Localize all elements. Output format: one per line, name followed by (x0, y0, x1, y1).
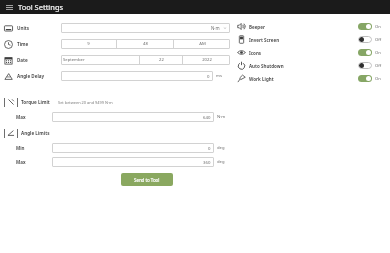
button[interactable]: On (358, 23, 372, 30)
button[interactable]: 22 (140, 55, 182, 65)
staticText: ms (216, 73, 230, 79)
staticText: N·m (217, 114, 230, 120)
button[interactable]: Max (4, 111, 230, 122)
staticText: On (375, 50, 387, 56)
button[interactable]: AM (174, 39, 230, 49)
staticText: Icons (249, 50, 358, 56)
button[interactable]: Off (358, 36, 372, 43)
staticText: Off (375, 63, 387, 69)
staticText: 360 (203, 159, 211, 165)
button[interactable]: 0 (61, 71, 213, 81)
staticText: On (375, 76, 387, 82)
staticText: 22 (159, 57, 164, 63)
staticText: AM (199, 41, 206, 47)
staticText: Angle Limits (21, 130, 50, 136)
button[interactable]: 0 (52, 143, 214, 153)
staticText: 0 (207, 73, 210, 79)
staticText: 640 (203, 114, 211, 120)
staticText: Work Light (249, 76, 358, 82)
button[interactable]: Auto Shutdown (237, 59, 387, 72)
staticText: Set between 20 and 9499 N·m (58, 100, 113, 105)
button[interactable]: Angle Delay (4, 68, 230, 84)
button[interactable]: Angle Limits (4, 127, 230, 139)
button[interactable]: Off (358, 62, 372, 69)
staticText: On (375, 24, 387, 30)
button[interactable]: On (358, 49, 372, 56)
staticText: Beeper (249, 24, 358, 30)
button[interactable]: Max (4, 156, 230, 167)
staticText: Off (375, 37, 387, 43)
button[interactable]: On (358, 75, 372, 82)
staticText: Invert Screen (249, 37, 358, 43)
staticText: 9 (87, 41, 90, 47)
button[interactable]: Beeper (237, 20, 387, 33)
button[interactable]: 9 (61, 39, 116, 49)
staticText: Angle Delay (17, 73, 59, 79)
button[interactable]: Menu (4, 2, 14, 12)
button[interactable]: Work Light (237, 72, 387, 85)
staticText: Time (17, 41, 59, 47)
staticText: Max (16, 114, 52, 120)
button[interactable]: Send to Tool (121, 173, 173, 186)
button[interactable]: 640 (52, 112, 214, 122)
staticText: Tool Settings (18, 2, 64, 12)
staticText: deg (217, 159, 230, 165)
button[interactable]: Units (4, 20, 230, 36)
button[interactable]: September (61, 55, 139, 65)
staticText: Torque Limit (21, 99, 50, 105)
button[interactable]: 2022 (183, 55, 230, 65)
staticText: 2022 (202, 57, 212, 63)
button[interactable]: Invert Screen (237, 33, 387, 46)
staticText: 48 (143, 41, 148, 47)
staticText: Auto Shutdown (249, 63, 358, 69)
button[interactable]: Date (4, 52, 230, 68)
button[interactable]: 360 (52, 157, 214, 167)
button[interactable]: N·m (61, 23, 230, 33)
staticText: deg (217, 145, 230, 151)
staticText: Date (17, 57, 59, 63)
staticText: Min (16, 145, 52, 151)
button[interactable]: Time (4, 36, 230, 52)
button[interactable]: Torque Limit (4, 96, 230, 108)
button[interactable]: 48 (117, 39, 173, 49)
staticText: 0 (208, 145, 211, 151)
staticText: Max (16, 159, 52, 165)
button[interactable]: Icons (237, 46, 387, 59)
staticText: Send to Tool (134, 177, 160, 183)
staticText: N·m (211, 25, 220, 31)
button[interactable]: Min (4, 142, 230, 153)
staticText: September (63, 57, 85, 63)
staticText: Units (17, 25, 59, 31)
